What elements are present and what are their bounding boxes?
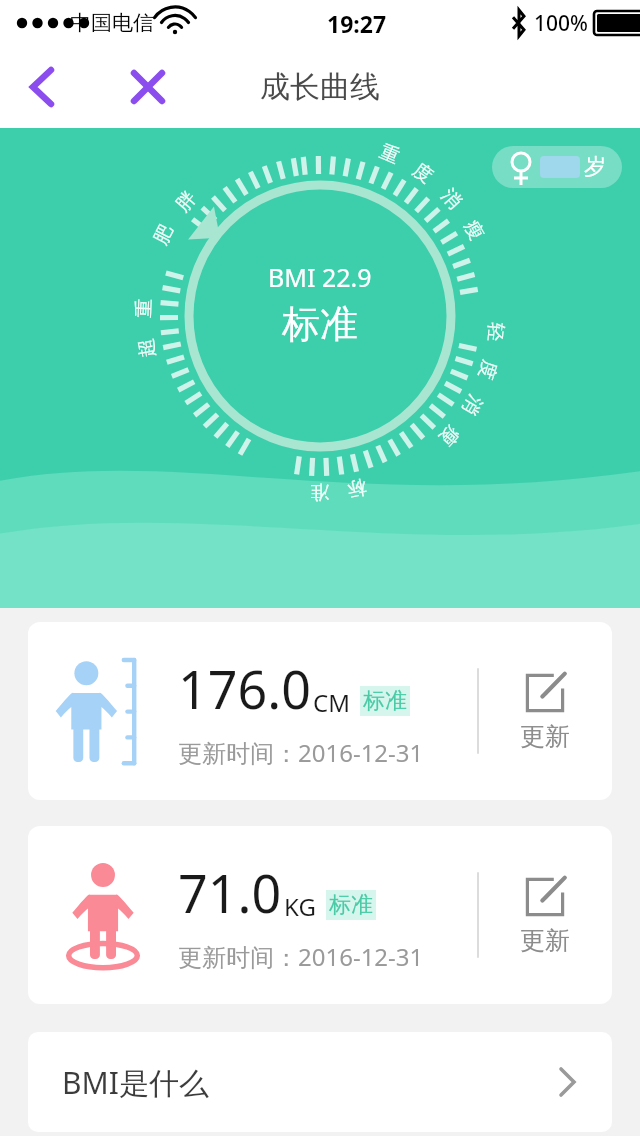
staticText: 176.0 (178, 653, 311, 724)
staticText: 岁 (584, 153, 606, 181)
staticText: 100% (534, 9, 588, 38)
staticText: 标准 (282, 300, 358, 348)
staticText: 19:27 (327, 8, 387, 39)
button[interactable]: 176.0 (28, 622, 612, 800)
button[interactable]: Close (118, 57, 178, 117)
button[interactable]: 更新 (512, 867, 578, 964)
staticText: 更新时间：2016-12-31 (178, 736, 424, 769)
button[interactable]: 岁 (492, 146, 622, 188)
button[interactable]: BMI是什么 (28, 1032, 612, 1132)
staticText: 更新 (520, 721, 570, 752)
staticText: BMI是什么 (62, 1062, 209, 1103)
staticText: 71.0 (178, 857, 282, 928)
button[interactable]: Back (12, 57, 72, 117)
staticText: 中国电信 (70, 10, 154, 36)
staticText: 成长曲线 (260, 68, 380, 106)
staticText: 标准 (329, 891, 373, 919)
staticText: 更新时间：2016-12-31 (178, 940, 424, 973)
button[interactable]: 更新 (512, 663, 578, 760)
staticText: KG (284, 890, 316, 923)
staticText: BMI 22.9 (268, 260, 372, 294)
staticText: CM (313, 686, 350, 719)
staticText: 标准 (363, 687, 407, 715)
staticText: 更新 (520, 925, 570, 956)
button[interactable]: 71.0 (28, 826, 612, 1004)
